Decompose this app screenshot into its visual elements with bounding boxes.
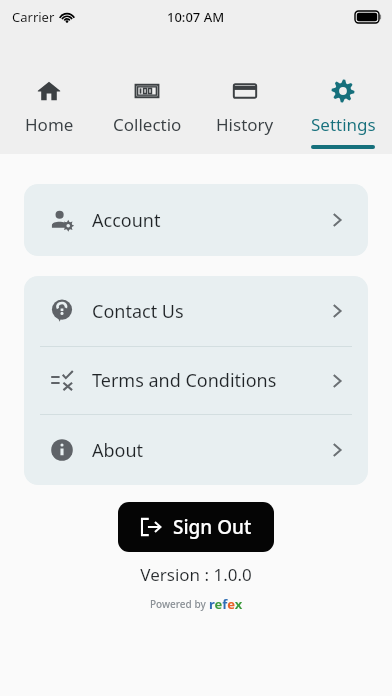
staticText: Powered by <box>150 597 209 611</box>
staticText: 10:07 AM <box>167 8 225 26</box>
staticText: About <box>92 438 144 463</box>
staticText: Home <box>25 113 74 136</box>
button[interactable]: Settings <box>294 78 392 154</box>
button[interactable]: About <box>24 415 368 485</box>
button[interactable]: Sign Out <box>118 502 274 552</box>
button[interactable]: Home <box>0 78 98 154</box>
staticText: Collectio <box>113 113 182 136</box>
staticText: Contact Us <box>92 299 184 324</box>
button[interactable]: Contact Us <box>24 276 368 346</box>
staticText: Settings <box>311 113 376 136</box>
staticText: Terms and Conditions <box>92 368 277 393</box>
staticText: refex <box>209 595 243 613</box>
button[interactable]: Collectio <box>98 78 196 154</box>
staticText: Version : 1.0.0 <box>0 563 392 586</box>
staticText: History <box>216 113 274 136</box>
staticText: Account <box>92 208 161 233</box>
staticText: Carrier <box>12 8 55 26</box>
button[interactable]: Terms and Conditions <box>24 347 368 414</box>
staticText: Sign Out <box>173 514 252 540</box>
button[interactable]: Account <box>24 184 368 256</box>
button[interactable]: History <box>196 78 294 154</box>
